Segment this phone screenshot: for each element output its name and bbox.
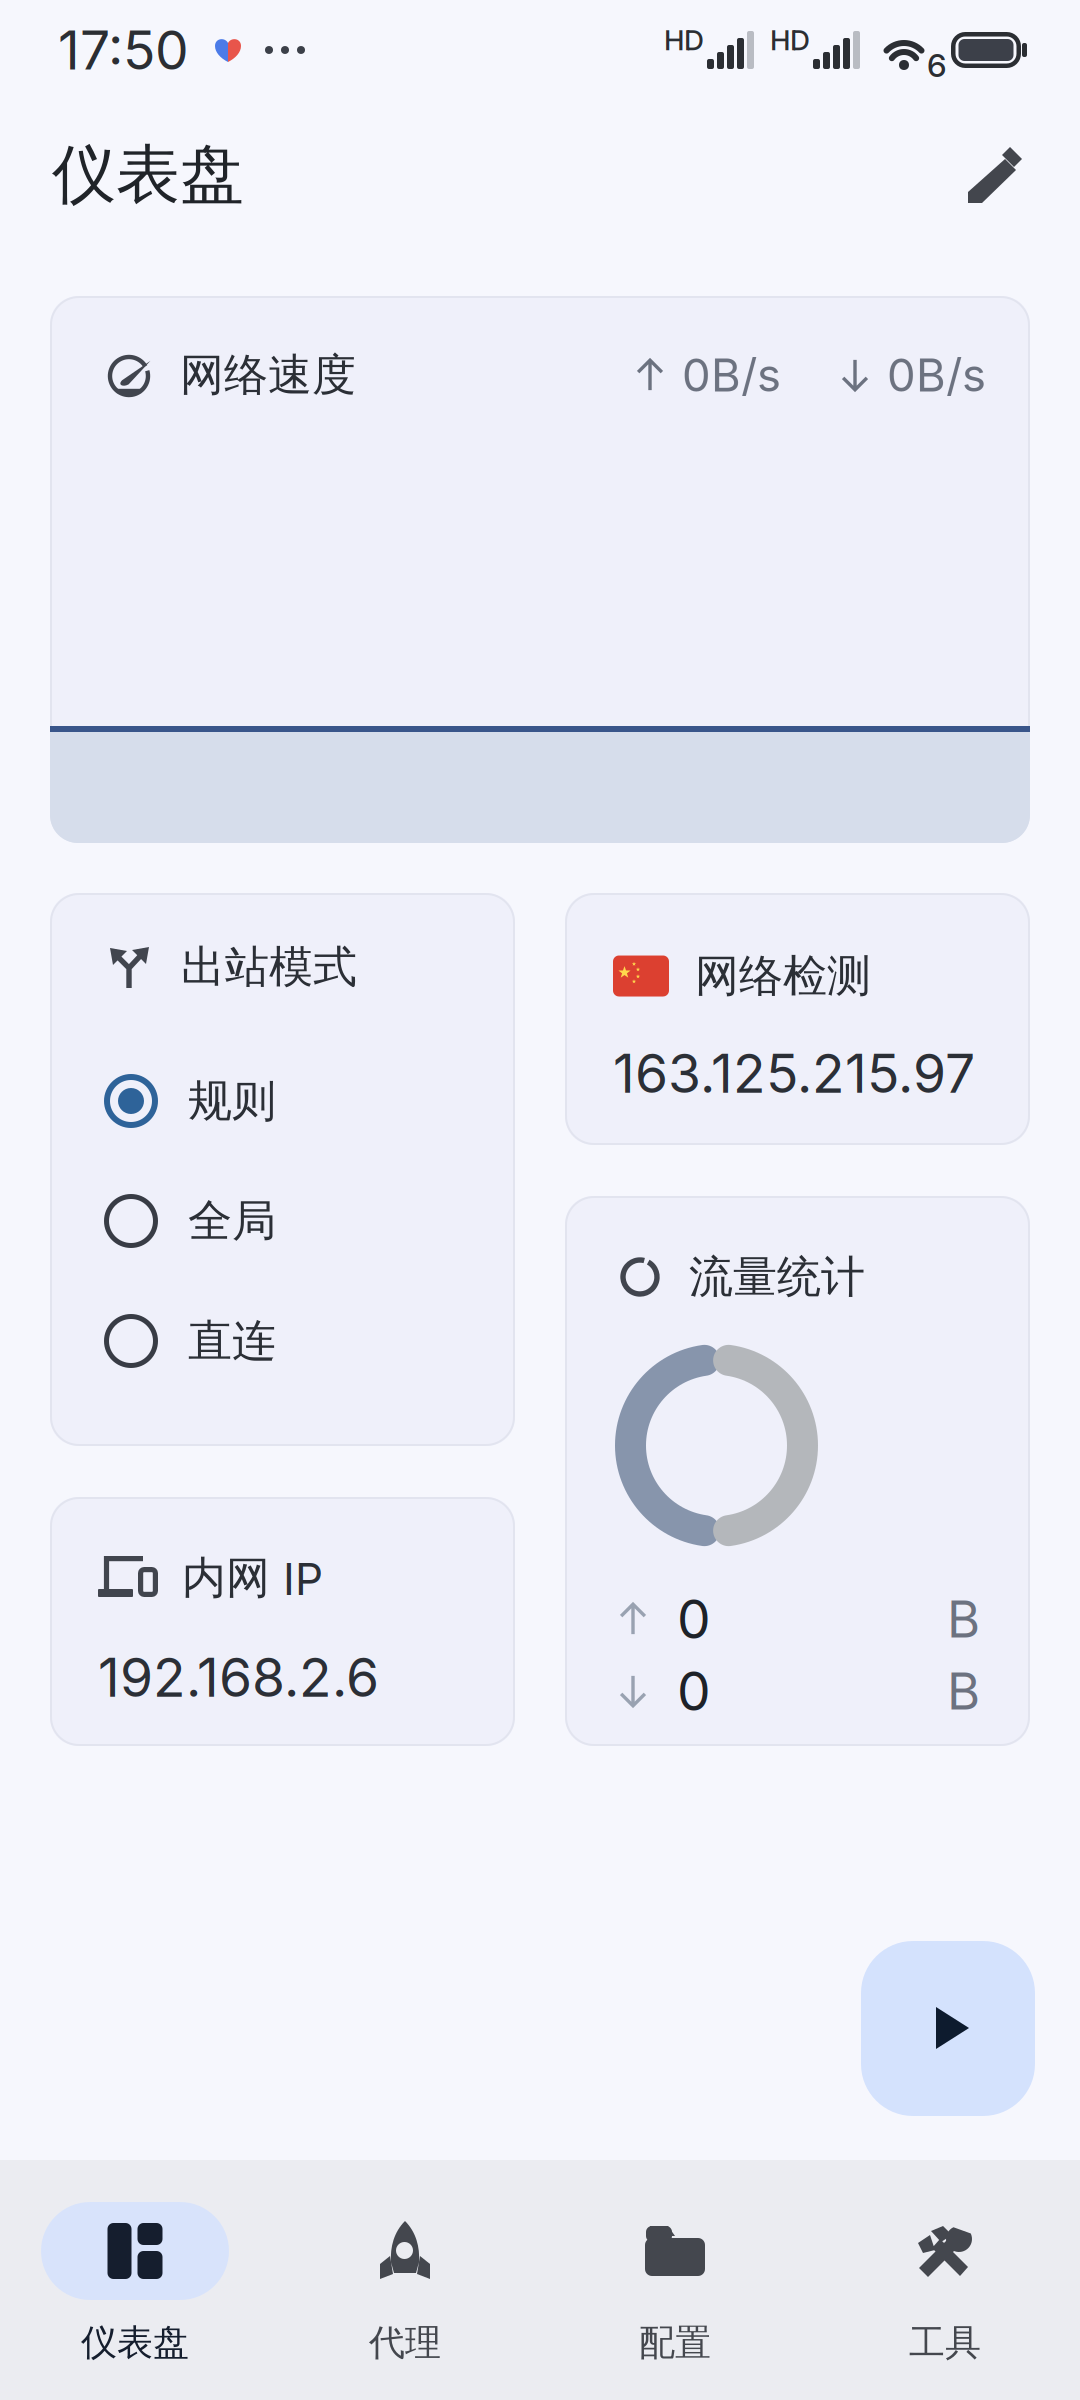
button[interactable]: 启动 [861, 1941, 1035, 2116]
staticText: 网络速度 [180, 347, 356, 403]
staticText: 内网 IP [182, 1550, 323, 1606]
button[interactable]: 配置 [540, 2160, 810, 2400]
staticText: 163.125.215.97 [613, 1041, 975, 1105]
staticText: 0 [677, 1659, 711, 1723]
button[interactable]: 直连 [104, 1281, 461, 1401]
staticText: 代理 [369, 2320, 441, 2365]
staticText: 流量统计 [689, 1249, 865, 1305]
staticText: B [947, 1660, 980, 1722]
staticText: 仪表盘 [52, 135, 244, 215]
staticText: HD [770, 23, 810, 57]
button[interactable]: 仪表盘 [0, 2160, 270, 2400]
staticText: 192.168.2.6 [98, 1645, 379, 1709]
button[interactable]: 全局 [104, 1161, 461, 1281]
staticText: 配置 [639, 2320, 711, 2365]
staticText: 网络检测 [695, 948, 871, 1004]
staticText: 规则 [188, 1073, 276, 1129]
staticText: 0B/s [682, 348, 781, 402]
staticText: 17:50 [58, 18, 189, 82]
staticText: 仪表盘 [81, 2320, 189, 2365]
staticText: 0B/s [887, 348, 986, 402]
staticText: 6 [927, 46, 947, 85]
staticText: 直连 [188, 1313, 276, 1369]
button[interactable]: 规则 [104, 1041, 461, 1161]
staticText: 0 [677, 1587, 711, 1651]
staticText: 全局 [188, 1193, 276, 1249]
button[interactable]: 工具 [810, 2160, 1080, 2400]
button[interactable]: 编辑 [944, 125, 1044, 225]
staticText: HD [664, 23, 704, 57]
staticText: B [947, 1588, 980, 1650]
staticText: 出站模式 [181, 939, 357, 995]
staticText: 工具 [909, 2320, 981, 2365]
button[interactable]: 代理 [270, 2160, 540, 2400]
